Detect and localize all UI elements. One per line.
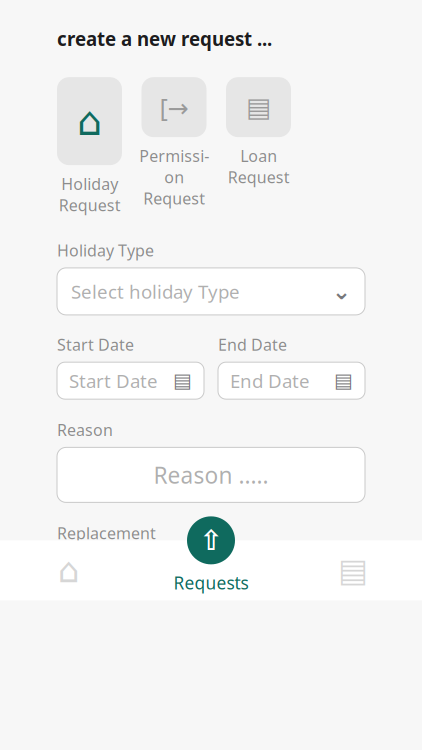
staticText: ⌂ xyxy=(58,551,80,590)
button[interactable]: End Date xyxy=(218,362,365,399)
button[interactable]: ▤ xyxy=(226,77,291,188)
button[interactable]: Reason ..... xyxy=(57,447,365,502)
staticText: ▤ xyxy=(338,552,368,588)
staticText: Loan Request xyxy=(227,145,289,188)
staticText: ▤ xyxy=(173,369,192,392)
button[interactable]: Calendar xyxy=(308,544,398,596)
staticText: Start Date xyxy=(57,334,134,355)
staticText: create a new request ... xyxy=(57,26,272,51)
button[interactable]: Select holiday Type xyxy=(57,268,365,315)
staticText: Requests xyxy=(173,571,248,594)
button[interactable]: [→ xyxy=(138,77,210,209)
staticText: Reason ..... xyxy=(153,460,268,490)
staticText: Holiday Type xyxy=(57,240,154,261)
button[interactable]: Submit request xyxy=(187,516,235,564)
staticText: ⌂ xyxy=(77,98,102,144)
staticText: Permission Request xyxy=(139,145,209,209)
button[interactable]: Replacement Employee xyxy=(57,551,365,598)
staticText: Reason xyxy=(57,419,113,440)
staticText: ⌄ xyxy=(332,561,351,587)
staticText: Start Date xyxy=(69,368,158,393)
staticText: End Date xyxy=(230,368,310,393)
staticText: End Date xyxy=(218,334,287,355)
button[interactable]: Requests xyxy=(156,544,266,596)
staticText: [→ xyxy=(159,90,188,124)
staticText: ⇧ xyxy=(199,524,222,556)
button[interactable]: Home xyxy=(24,544,114,596)
button[interactable]: ⌂ xyxy=(57,77,122,216)
staticText: Select holiday Type xyxy=(71,279,240,304)
button[interactable]: Start Date xyxy=(57,362,204,399)
staticText: ⌄ xyxy=(332,278,351,304)
staticText: Holiday Request xyxy=(58,173,120,216)
staticText: ▤ xyxy=(246,92,271,122)
staticText: Replacement Employee xyxy=(71,562,278,586)
staticText: Replacement xyxy=(57,522,156,544)
staticText: ▤ xyxy=(334,369,353,392)
